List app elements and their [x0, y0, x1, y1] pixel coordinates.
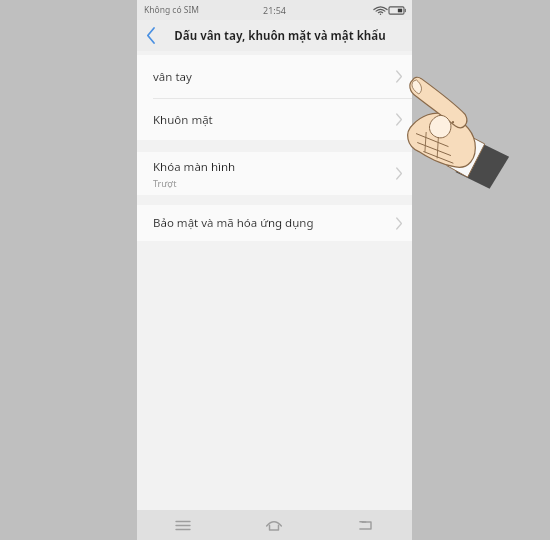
button[interactable]: Recent apps: [137, 510, 228, 540]
staticText: Trượt: [153, 177, 177, 189]
staticText: Dấu vân tay, khuôn mặt và mật khẩu: [174, 28, 386, 44]
button[interactable]: vân tay: [137, 55, 412, 98]
button[interactable]: Khóa màn hình: [137, 152, 412, 195]
staticText: Khóa màn hình: [153, 159, 236, 175]
button[interactable]: Back: [137, 20, 165, 51]
button[interactable]: Home: [228, 510, 320, 540]
staticText: 21:54: [263, 4, 287, 16]
staticText: Không có SIM: [144, 4, 200, 16]
button[interactable]: Bảo mật và mã hóa ứng dụng: [137, 205, 412, 241]
button[interactable]: Khuôn mặt: [137, 99, 412, 140]
staticText: Khuôn mặt: [153, 112, 213, 128]
button[interactable]: Back: [320, 510, 412, 540]
staticText: Bảo mật và mã hóa ứng dụng: [153, 215, 314, 231]
staticText: vân tay: [153, 69, 192, 85]
